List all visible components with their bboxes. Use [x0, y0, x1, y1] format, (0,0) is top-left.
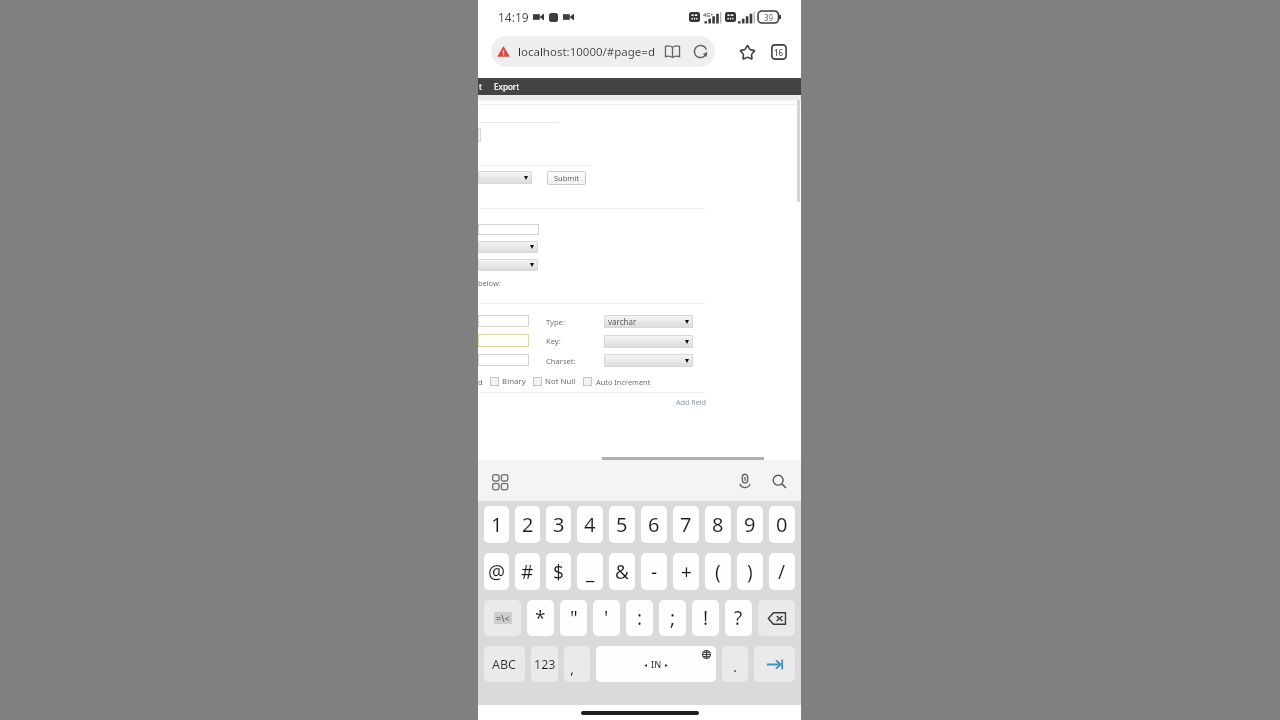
staticText: 8 [712, 511, 724, 538]
button[interactable]: Submit [547, 171, 586, 185]
staticText: 5 [616, 511, 628, 538]
button[interactable]: * [527, 600, 554, 636]
staticText: $ [553, 559, 564, 585]
staticText: * [535, 605, 546, 631]
button[interactable]: _ [577, 553, 603, 590]
button[interactable]: 2 [515, 506, 540, 543]
staticText: d [478, 377, 483, 387]
staticText: Binary [502, 376, 526, 387]
button[interactable]: Export [494, 81, 520, 92]
staticText: localhost:10000/#page=d [518, 44, 655, 60]
staticText: ! [703, 605, 709, 631]
button[interactable]: " [560, 600, 587, 636]
staticText: varchar [608, 316, 637, 327]
button[interactable]: 9 [737, 506, 763, 543]
button[interactable]: @ [484, 553, 509, 590]
staticText: t [479, 81, 482, 92]
button[interactable]: checkbox [533, 377, 542, 386]
staticText: ABC [492, 656, 517, 673]
button[interactable]: Search [769, 471, 789, 491]
button[interactable] [604, 354, 693, 367]
button[interactable]: , [564, 646, 590, 682]
button[interactable]: ; [659, 600, 686, 636]
button[interactable]: key [754, 646, 795, 682]
button[interactable]: . [722, 646, 748, 682]
button[interactable]: 6 [641, 506, 667, 543]
staticText: 4 [584, 511, 596, 538]
staticText: 6 [648, 511, 660, 538]
staticText: ) [747, 559, 753, 585]
staticText: 0 [776, 511, 788, 538]
staticText: / [778, 559, 786, 585]
button[interactable]: 7 [673, 506, 699, 543]
button[interactable]: + [673, 553, 699, 590]
staticText: 9 [744, 511, 756, 538]
staticText: 7 [680, 511, 692, 538]
staticText: ( [715, 559, 721, 585]
staticText: : [637, 605, 643, 631]
button[interactable] [478, 171, 532, 184]
staticText: ▸ [665, 661, 669, 668]
staticText: " [570, 605, 578, 631]
button[interactable]: Add field [676, 397, 706, 407]
button[interactable]: ? [725, 600, 752, 636]
staticText: ? [734, 605, 743, 631]
staticText: Submit [554, 173, 580, 183]
button[interactable]: Voice input [735, 471, 755, 491]
staticText: @ [488, 559, 506, 585]
button[interactable]: 1 [484, 506, 509, 543]
button[interactable]: $ [546, 553, 571, 590]
button[interactable]: : [626, 600, 653, 636]
button[interactable]: ' [593, 600, 620, 636]
button[interactable]: 3 [546, 506, 571, 543]
button[interactable]: 4 [577, 506, 603, 543]
button[interactable]: ABC [484, 646, 525, 682]
button[interactable]: 123 [531, 646, 558, 682]
button[interactable]: Bookmark [734, 39, 760, 65]
staticText: 39 [764, 12, 774, 23]
staticText: =\< [496, 612, 510, 624]
button[interactable]: ( [705, 553, 731, 590]
button[interactable]: key [758, 600, 795, 636]
staticText: + [681, 559, 692, 585]
staticText: below: [478, 278, 501, 288]
button[interactable]: localhost:10000/#page=d [491, 36, 715, 67]
button[interactable]: checkbox [490, 377, 499, 386]
staticText: ◂ [644, 661, 648, 668]
staticText: Not Null [545, 376, 576, 387]
staticText: 123 [534, 656, 556, 673]
staticText: 16 [774, 47, 784, 58]
button[interactable]: ◂ [596, 646, 716, 682]
staticText: Charset: [546, 356, 576, 366]
staticText: - [651, 559, 658, 585]
button[interactable]: =\< [484, 600, 521, 636]
button[interactable]: - [641, 553, 667, 590]
button[interactable]: ) [737, 553, 763, 590]
staticText: IN [651, 658, 662, 670]
staticText: 14:19 [498, 9, 529, 25]
staticText: 4G+ [703, 11, 714, 18]
button[interactable] [478, 241, 538, 253]
staticText: 1 [491, 511, 503, 538]
button[interactable]: Keyboard modes [491, 473, 507, 489]
button[interactable]: ! [692, 600, 719, 636]
button[interactable]: & [609, 553, 635, 590]
button[interactable]: / [769, 553, 795, 590]
staticText: ; [670, 605, 676, 631]
staticText: 2 [522, 511, 534, 538]
staticText: ' [604, 605, 609, 631]
button[interactable] [478, 259, 538, 271]
button[interactable]: checkbox [583, 377, 592, 386]
staticText: Key: [546, 336, 561, 346]
button[interactable]: Tabs [766, 39, 792, 65]
button[interactable] [604, 335, 693, 348]
button[interactable]: varchar [604, 315, 693, 328]
button[interactable]: 8 [705, 506, 731, 543]
staticText: , [570, 658, 575, 678]
staticText: Auto Increment [596, 377, 651, 387]
button[interactable]: 5 [609, 506, 635, 543]
staticText: & [615, 559, 629, 585]
button[interactable]: # [515, 553, 540, 590]
button[interactable]: 0 [769, 506, 795, 543]
staticText: Type: [546, 317, 565, 327]
